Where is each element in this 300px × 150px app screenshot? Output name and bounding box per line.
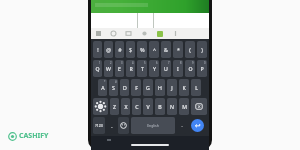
staticText: B — [158, 103, 162, 110]
button[interactable]: * — [173, 41, 183, 58]
button[interactable]: Clipboard — [125, 30, 132, 37]
staticText: 0 — [204, 61, 206, 65]
button[interactable]: English — [131, 117, 175, 134]
staticText: D — [123, 84, 127, 91]
button[interactable]: M — [179, 98, 189, 115]
staticText: N — [170, 103, 174, 110]
staticText: % — [140, 46, 145, 53]
button[interactable]: Emoji — [118, 117, 129, 134]
button[interactable]: Q — [93, 60, 102, 77]
staticText: 2 — [110, 61, 112, 65]
button[interactable]: Settings — [110, 30, 117, 37]
staticText: A — [101, 84, 105, 91]
button[interactable]: O — [185, 60, 195, 77]
staticText: 5 — [144, 61, 146, 65]
button[interactable]: More — [172, 30, 179, 37]
staticText: 3 — [121, 61, 123, 65]
staticText: M — [182, 103, 187, 110]
staticText: Q — [95, 65, 100, 72]
button[interactable]: ! — [93, 41, 102, 58]
staticText: 7 — [168, 61, 170, 65]
button[interactable]: H — [155, 79, 165, 96]
button[interactable]: . — [177, 117, 186, 134]
staticText: H — [158, 84, 162, 91]
staticText: 8 — [180, 61, 182, 65]
staticText: E — [118, 65, 121, 72]
button[interactable]: , — [107, 117, 116, 134]
staticText: V — [146, 103, 150, 110]
button[interactable]: S — [109, 79, 118, 96]
button[interactable]: Translate — [157, 31, 163, 37]
button[interactable]: K — [179, 79, 189, 96]
button[interactable]: P — [197, 60, 207, 77]
staticText: G — [146, 84, 150, 91]
button[interactable]: $ — [126, 41, 135, 58]
staticText: C — [135, 103, 139, 110]
button[interactable]: A — [98, 79, 107, 96]
staticText: U — [164, 65, 168, 72]
button[interactable]: Z — [110, 98, 119, 115]
staticText: P — [200, 65, 204, 72]
staticText: * — [177, 46, 180, 53]
staticText: # — [115, 80, 117, 84]
button[interactable]: Enter — [191, 119, 204, 132]
button[interactable]: @ — [104, 41, 113, 58]
staticText: I — [177, 65, 179, 72]
staticText: # — [118, 46, 122, 53]
staticText: . — [181, 123, 183, 128]
button[interactable]: V — [143, 98, 153, 115]
staticText: , — [111, 123, 113, 128]
button[interactable]: W — [104, 60, 113, 77]
staticText: 1 — [99, 61, 101, 65]
button[interactable]: Sticker — [141, 30, 148, 37]
staticText: W — [106, 65, 111, 72]
button[interactable]: F — [131, 79, 141, 96]
staticText: K — [182, 84, 186, 91]
button[interactable]: Y — [149, 60, 159, 77]
staticText: S — [112, 84, 115, 91]
button[interactable]: T — [137, 60, 147, 77]
button[interactable]: Menu — [95, 30, 102, 37]
button[interactable]: Backspace — [191, 98, 207, 115]
staticText: @ — [106, 46, 111, 53]
button[interactable]: ?123 — [93, 117, 105, 134]
staticText: R — [129, 65, 133, 72]
staticText: & — [164, 46, 168, 53]
button[interactable]: D — [120, 79, 129, 96]
staticText: 4 — [132, 61, 134, 65]
button[interactable]: E — [115, 60, 124, 77]
staticText: Y — [153, 65, 156, 72]
button[interactable]: % — [137, 41, 147, 58]
staticText: ?123 — [95, 123, 103, 128]
button[interactable]: G — [143, 79, 153, 96]
button[interactable]: ( — [185, 41, 195, 58]
button[interactable]: # — [115, 41, 124, 58]
staticText: 6 — [156, 61, 158, 65]
staticText: O — [188, 65, 193, 72]
button[interactable]: X — [121, 98, 130, 115]
button[interactable]: ) — [197, 41, 207, 58]
staticText: F — [135, 84, 138, 91]
staticText: ! — [97, 46, 99, 53]
staticText: ) — [201, 46, 203, 53]
staticText: 9 — [192, 61, 194, 65]
button[interactable]: L — [191, 79, 201, 96]
button[interactable]: U — [161, 60, 171, 77]
staticText: English — [147, 123, 159, 128]
staticText: J — [171, 84, 173, 91]
staticText: X — [124, 103, 128, 110]
staticText: L — [195, 84, 198, 91]
button[interactable]: N — [167, 98, 177, 115]
button[interactable]: J — [167, 79, 177, 96]
button[interactable]: & — [161, 41, 171, 58]
button[interactable]: Shift — [93, 98, 108, 115]
button[interactable]: B — [155, 98, 165, 115]
staticText: * — [104, 80, 106, 84]
staticText: $ — [129, 46, 132, 53]
staticText: ( — [189, 46, 191, 53]
button[interactable]: I — [173, 60, 183, 77]
button[interactable]: R — [126, 60, 135, 77]
button[interactable]: C — [132, 98, 141, 115]
staticText: Z — [113, 103, 116, 110]
button[interactable]: ^ — [149, 41, 159, 58]
